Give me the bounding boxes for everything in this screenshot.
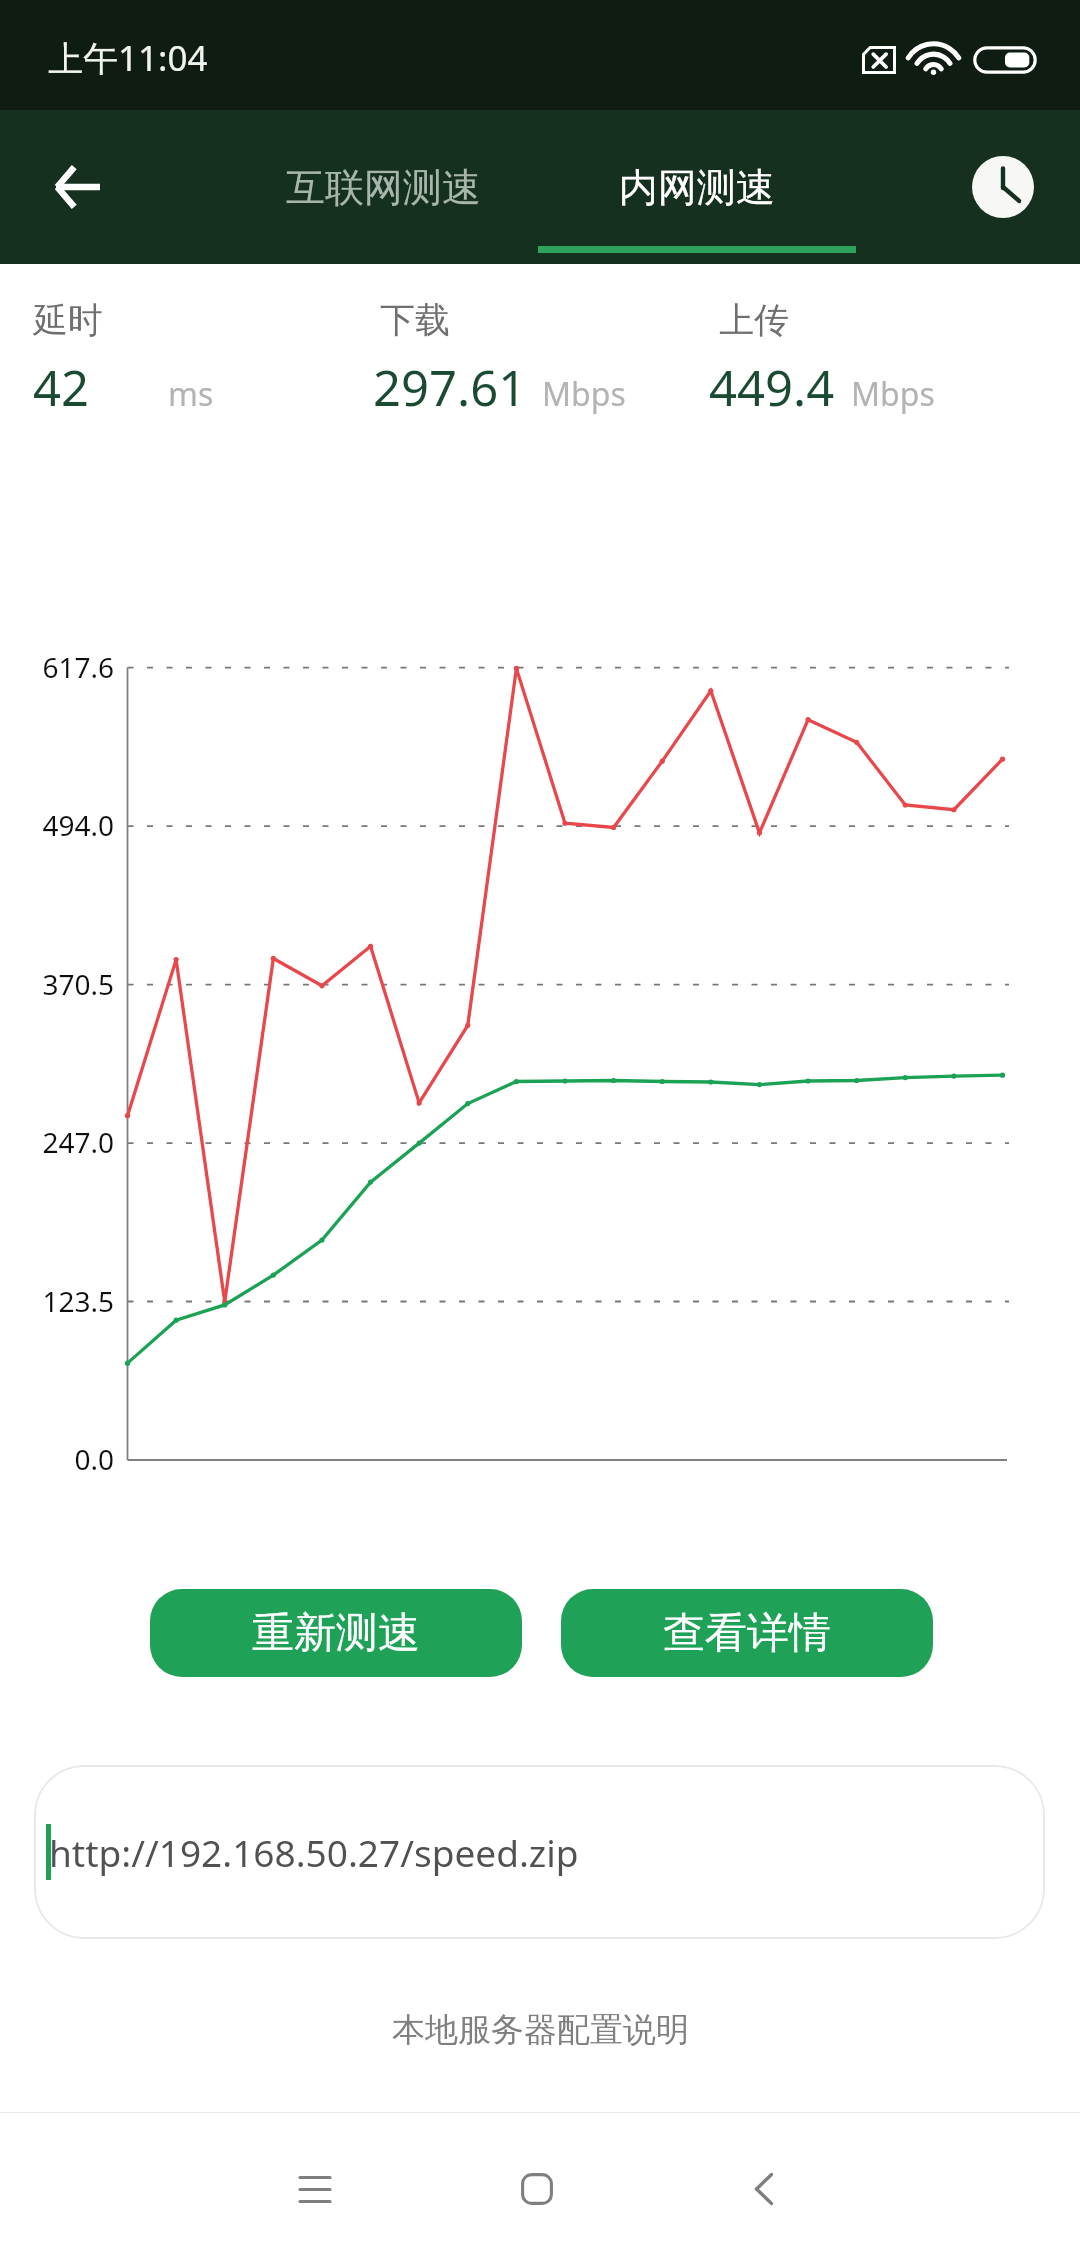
staticText: ms xyxy=(168,372,214,416)
button[interactable]: http://192.168.50.27/speed.zip xyxy=(34,1765,1045,1939)
button[interactable]: 查看详情 xyxy=(561,1589,933,1677)
staticText: 延时 xyxy=(33,298,103,342)
button[interactable]: 重新测速 xyxy=(150,1589,522,1677)
staticText: 重新测速 xyxy=(252,1607,420,1660)
staticText: 297.61 xyxy=(373,354,527,421)
button[interactable]: History xyxy=(942,126,1064,248)
staticText: 内网测速 xyxy=(619,163,775,212)
staticText: 123.5 xyxy=(14,1282,114,1320)
button[interactable]: 本地服务器配置说明 xyxy=(372,1997,709,2063)
button[interactable]: Back xyxy=(689,2130,839,2248)
staticText: 互联网测速 xyxy=(286,163,481,212)
staticText: http://192.168.50.27/speed.zip xyxy=(49,1827,579,1877)
staticText: 370.5 xyxy=(14,965,114,1003)
staticText: 上午11:04 xyxy=(48,34,208,82)
button[interactable]: Home xyxy=(462,2130,612,2248)
staticText: 449.4 xyxy=(709,354,835,421)
staticText: 247.0 xyxy=(14,1123,114,1161)
staticText: 0.0 xyxy=(14,1440,114,1478)
staticText: 617.6 xyxy=(14,648,114,686)
staticText: 42 xyxy=(33,354,90,421)
button[interactable]: Back xyxy=(22,132,132,242)
button[interactable]: 内网测速 xyxy=(567,110,827,264)
staticText: 上传 xyxy=(719,298,789,342)
staticText: 本地服务器配置说明 xyxy=(392,2009,689,2051)
button[interactable]: Recent apps xyxy=(240,2130,390,2248)
button[interactable]: 互联网测速 xyxy=(253,110,513,264)
staticText: Mbps xyxy=(542,372,626,416)
staticText: 494.0 xyxy=(14,806,114,844)
staticText: 查看详情 xyxy=(663,1607,831,1660)
staticText: Mbps xyxy=(851,372,935,416)
staticText: 下载 xyxy=(380,298,450,342)
